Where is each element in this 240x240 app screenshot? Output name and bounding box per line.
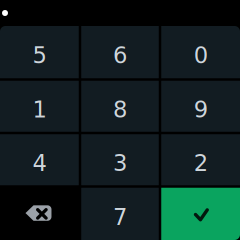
staticText: 6 (113, 42, 127, 69)
staticText: 3 (113, 150, 127, 176)
staticText: 4 (32, 150, 46, 176)
button[interactable]: 8 (81, 81, 159, 132)
staticText: 7 (113, 204, 127, 230)
button[interactable]: Delete (1, 188, 78, 239)
button[interactable]: 0 (162, 27, 239, 78)
staticText: 1 (32, 96, 46, 123)
button[interactable]: 5 (1, 27, 78, 78)
button[interactable]: 1 (1, 81, 78, 132)
button[interactable]: 9 (162, 81, 239, 132)
staticText: 8 (113, 96, 127, 123)
staticText: 5 (32, 42, 46, 69)
button[interactable]: 3 (81, 134, 159, 185)
button[interactable]: 2 (162, 134, 239, 185)
button[interactable]: 4 (1, 134, 78, 185)
button[interactable]: Confirm (162, 188, 239, 239)
staticText: 9 (194, 96, 208, 123)
staticText: 0 (194, 42, 208, 69)
staticText: 2 (194, 150, 208, 176)
button[interactable]: 6 (81, 27, 159, 78)
button[interactable]: 7 (81, 188, 159, 239)
